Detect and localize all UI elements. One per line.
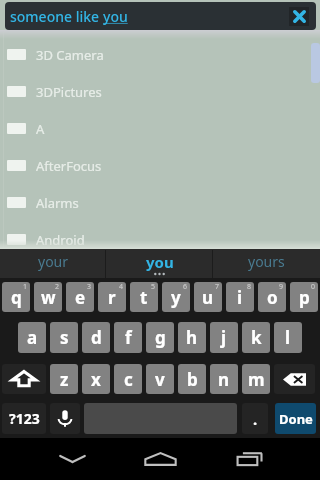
button[interactable]: o [258, 282, 286, 312]
staticText: you [146, 252, 174, 272]
staticText: p [299, 286, 310, 309]
button[interactable]: yours [213, 249, 320, 278]
staticText: A [36, 120, 45, 138]
button[interactable]: l [274, 322, 302, 353]
button[interactable]: d [82, 322, 110, 353]
button[interactable]: ?123 [2, 403, 46, 434]
button[interactable]: r [98, 282, 126, 312]
staticText: Alarms [36, 194, 79, 212]
staticText: 0 [311, 282, 316, 292]
staticText: r [108, 286, 116, 309]
button[interactable]: y [162, 282, 190, 312]
staticText: c [124, 368, 133, 391]
staticText: 1 [23, 282, 28, 292]
button[interactable]: x [82, 364, 110, 394]
staticText: your [38, 252, 69, 271]
staticText: . [253, 409, 258, 429]
button[interactable]: n [210, 364, 238, 394]
button[interactable]: f [114, 322, 142, 353]
staticText: g [155, 326, 166, 349]
staticText: b [187, 368, 198, 391]
button[interactable] [2, 364, 46, 394]
button[interactable]: g [146, 322, 174, 353]
button[interactable]: u [194, 282, 222, 312]
button[interactable]: someone like [5, 2, 316, 30]
staticText: 2 [55, 282, 60, 292]
button[interactable]: h [178, 322, 206, 353]
staticText: 5 [151, 282, 156, 292]
button[interactable]: Recent apps [226, 438, 278, 480]
staticText: q [11, 286, 22, 309]
staticText: ?123 [9, 409, 40, 428]
staticText: t [140, 286, 148, 309]
staticText: v [155, 368, 165, 391]
staticText: e [75, 286, 86, 309]
button[interactable]: j [210, 322, 238, 353]
button[interactable]: s [50, 322, 78, 353]
button[interactable]: t [130, 282, 158, 312]
staticText: o [267, 286, 278, 309]
button[interactable]: A [0, 110, 320, 147]
staticText: 3DPictures [36, 83, 102, 101]
button[interactable]: z [50, 364, 78, 394]
staticText: i [237, 286, 243, 309]
button[interactable]: your [0, 249, 106, 278]
other: Shift [2, 364, 46, 394]
staticText: 6 [183, 282, 188, 292]
button[interactable]: 3D Camera [0, 36, 320, 73]
button[interactable]: Home [134, 438, 186, 480]
button[interactable] [50, 403, 80, 434]
button[interactable]: a [18, 322, 46, 353]
button[interactable]: i [226, 282, 254, 312]
button[interactable]: Android [0, 221, 320, 258]
staticText: someone like [10, 7, 103, 26]
staticText: l [285, 326, 291, 349]
button[interactable]: 3DPictures [0, 73, 320, 110]
staticText: s [60, 326, 69, 349]
button[interactable]: Clear query [289, 7, 309, 26]
staticText: a [27, 326, 38, 349]
button[interactable]: w [34, 282, 62, 312]
staticText: x [91, 368, 101, 391]
staticText: k [251, 326, 262, 349]
staticText: 7 [215, 282, 220, 292]
staticText: yours [248, 252, 285, 271]
button[interactable]: Done [275, 403, 316, 434]
staticText: Done [279, 410, 313, 428]
staticText: w [41, 286, 56, 309]
button[interactable]: . [242, 403, 268, 434]
button[interactable]: b [178, 364, 206, 394]
button[interactable] [274, 364, 315, 394]
button[interactable]: k [242, 322, 270, 353]
staticText: h [186, 326, 198, 349]
staticText: m [248, 368, 265, 391]
staticText: you [103, 7, 128, 26]
button[interactable]: AfterFocus [0, 147, 320, 184]
staticText: 3D Camera [36, 46, 104, 64]
button[interactable]: v [146, 364, 174, 394]
button[interactable]: you [106, 249, 213, 278]
staticText: n [218, 368, 230, 391]
button[interactable]: p [290, 282, 318, 312]
staticText: y [171, 286, 181, 309]
staticText: d [91, 326, 102, 349]
button[interactable]: e [66, 282, 94, 312]
staticText: u [202, 286, 214, 309]
button[interactable]: Hide keyboard [46, 438, 98, 480]
staticText: 9 [279, 282, 284, 292]
staticText: AfterFocus [36, 157, 102, 175]
staticText: 3 [87, 282, 92, 292]
staticText: z [60, 368, 69, 391]
button[interactable]: m [242, 364, 270, 394]
other: Voice input [50, 403, 80, 434]
staticText: j [221, 326, 227, 349]
button[interactable]: Alarms [0, 184, 320, 221]
staticText: Android [36, 231, 85, 249]
button[interactable]: q [2, 282, 30, 312]
button[interactable]: c [114, 364, 142, 394]
other: Backspace [274, 364, 315, 394]
staticText: f [125, 326, 132, 349]
staticText: 4 [119, 282, 124, 292]
